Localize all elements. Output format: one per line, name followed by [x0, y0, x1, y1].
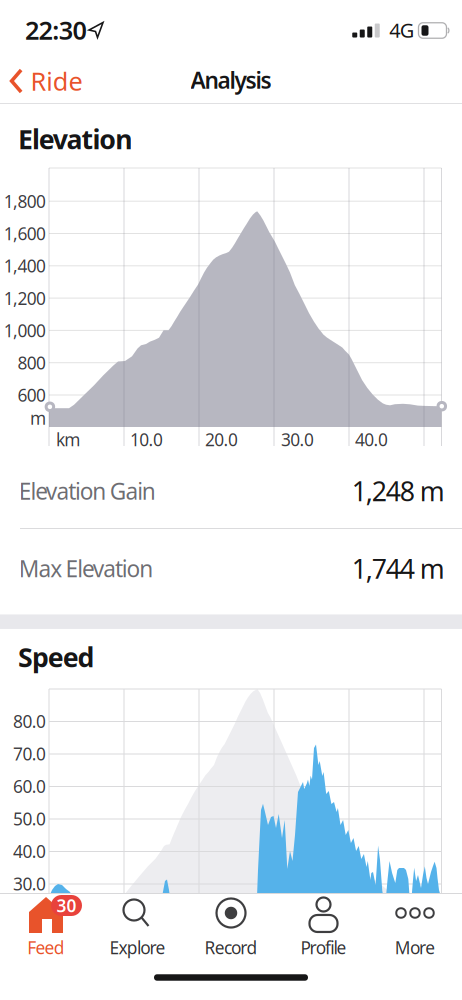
staticText: 1,744 m: [352, 551, 445, 586]
staticText: 20.0: [205, 428, 238, 451]
staticText: Ride: [31, 64, 82, 98]
staticText: 1,600: [4, 222, 46, 245]
staticText: 1,800: [4, 190, 46, 213]
staticText: Speed: [18, 639, 95, 675]
staticText: Elevation: [18, 121, 132, 157]
staticText: Profile: [300, 936, 347, 959]
button[interactable]: Ride: [10, 64, 82, 98]
staticText: km: [56, 428, 80, 451]
button[interactable]: Explore: [109, 893, 166, 959]
staticText: 40.0: [13, 840, 46, 863]
staticText: 80.0: [13, 710, 46, 733]
staticText: 1,200: [4, 287, 46, 310]
staticText: Elevation Gain: [19, 476, 156, 506]
staticText: Record: [204, 936, 257, 959]
button[interactable]: Profile: [300, 893, 347, 959]
staticText: Explore: [109, 936, 166, 959]
staticText: Feed: [27, 936, 65, 959]
staticText: 50.0: [13, 807, 46, 830]
staticText: 30: [56, 894, 76, 917]
staticText: 60.0: [13, 775, 46, 798]
staticText: 30.0: [13, 872, 46, 895]
staticText: 40.0: [355, 428, 388, 451]
staticText: 800: [17, 351, 46, 374]
button[interactable]: Record: [204, 893, 257, 959]
staticText: More: [395, 936, 435, 959]
button[interactable]: More: [392, 893, 438, 959]
staticText: 30.0: [281, 428, 314, 451]
staticText: m: [30, 406, 46, 429]
staticText: 22:30: [25, 13, 86, 47]
staticText: 600: [17, 384, 46, 407]
staticText: Max Elevation: [19, 553, 153, 583]
staticText: 10.0: [130, 428, 163, 451]
staticText: 70.0: [13, 742, 46, 765]
button[interactable]: 30: [14, 893, 78, 959]
staticText: 4G: [389, 17, 415, 43]
staticText: 1,400: [4, 254, 46, 277]
staticText: 1,000: [4, 319, 46, 342]
staticText: Analysis: [190, 65, 271, 95]
staticText: 1,248 m: [352, 473, 445, 509]
